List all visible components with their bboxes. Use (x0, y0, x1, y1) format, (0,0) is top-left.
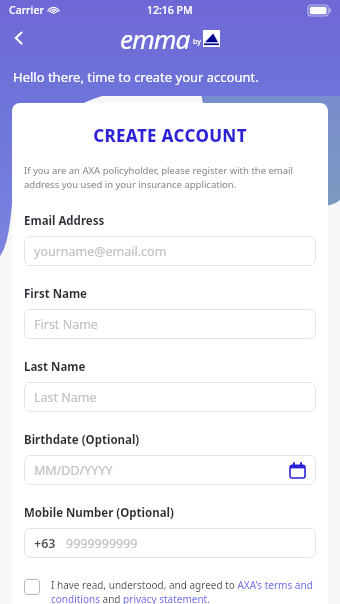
staticText: Carrier (9, 3, 44, 17)
button[interactable]: First Name (24, 309, 316, 339)
staticText: If you are an AXA policyholder, please r… (24, 164, 316, 191)
staticText: Last Name (34, 389, 97, 406)
staticText: 12:16 PM (147, 3, 193, 17)
staticText: First Name (34, 316, 98, 333)
staticText: Hello there, time to create your account… (13, 68, 259, 86)
staticText: Last Name (24, 359, 86, 375)
button[interactable]: Open date picker (288, 461, 306, 479)
staticText: Email Address (24, 213, 105, 229)
staticText: yourname@email.com (34, 243, 167, 260)
button[interactable]: MM/DD/YYYY (24, 455, 316, 485)
staticText: 9999999999 (66, 535, 138, 552)
staticText: CREATE ACCOUNT (24, 124, 316, 147)
staticText: MM/DD/YYYY (34, 462, 113, 479)
button[interactable]: I have read, understood, and agreed to A… (24, 578, 316, 604)
button[interactable]: +63 (24, 528, 316, 558)
button[interactable]: Last Name (24, 382, 316, 412)
staticText: Birthdate (Optional) (24, 432, 140, 448)
staticText: I have read, understood, and agreed to A… (51, 578, 316, 604)
staticText: First Name (24, 286, 87, 302)
button[interactable]: yourname@email.com (24, 236, 316, 266)
staticText: +63 (34, 535, 56, 552)
staticText: by (193, 37, 201, 47)
button[interactable]: Back (0, 20, 38, 56)
staticText: Mobile Number (Optional) (24, 505, 174, 521)
staticText: emma (120, 21, 190, 56)
